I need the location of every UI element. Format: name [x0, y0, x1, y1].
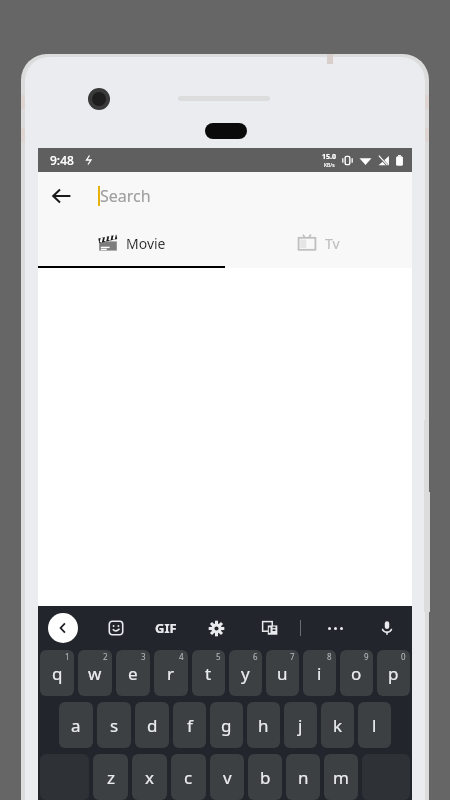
staticText: a [71, 714, 81, 737]
staticText: c [184, 766, 193, 789]
staticText: GIF [155, 619, 177, 637]
staticText: j [298, 714, 303, 737]
staticText: q [52, 662, 63, 685]
staticText: w [88, 662, 102, 685]
button[interactable]: Search [86, 172, 412, 220]
staticText: y [241, 662, 250, 685]
button[interactable]: e [116, 650, 150, 696]
button[interactable]: k [321, 702, 354, 748]
staticText: 9:48 [50, 152, 74, 168]
staticText: 15.0 [322, 152, 336, 162]
button[interactable]: Tv [225, 220, 412, 266]
staticText: 3 [141, 651, 146, 662]
staticText: Movie [126, 234, 166, 253]
staticText: o [351, 662, 362, 685]
button[interactable]: More options [320, 613, 350, 643]
staticText: v [223, 766, 232, 789]
button[interactable]: n [286, 754, 320, 800]
button[interactable]: Voice input [372, 613, 402, 643]
button[interactable]: f [173, 702, 206, 748]
staticText: l [372, 714, 377, 737]
staticText: 6 [253, 651, 258, 662]
staticText: h [258, 714, 269, 737]
staticText: KB/s [324, 162, 335, 169]
staticText: u [277, 662, 288, 685]
staticText: 0 [401, 651, 406, 662]
button[interactable]: j [284, 702, 317, 748]
button[interactable]: y [229, 650, 262, 696]
button[interactable]: s [97, 702, 131, 748]
staticText: g [221, 714, 232, 737]
staticText: p [388, 662, 399, 685]
staticText: z [107, 766, 115, 789]
staticText: i [317, 662, 322, 685]
staticText: t [205, 662, 212, 685]
button[interactable]: Translate [255, 613, 285, 643]
button[interactable]: w [78, 650, 112, 696]
staticText: 8 [327, 651, 332, 662]
staticText: b [260, 766, 271, 789]
staticText: x [145, 766, 154, 789]
button[interactable]: o [340, 650, 373, 696]
staticText: 5 [216, 651, 221, 662]
staticText: f [187, 714, 193, 737]
staticText: 9 [364, 651, 369, 662]
staticText: Search [100, 185, 151, 207]
button[interactable]: z [93, 754, 128, 800]
button[interactable]: b [248, 754, 282, 800]
button[interactable]: Stickers [101, 613, 131, 643]
button[interactable]: x [132, 754, 167, 800]
button[interactable]: Back [48, 613, 78, 643]
staticText: r [167, 662, 175, 685]
button[interactable]: d [135, 702, 169, 748]
staticText: 2 [103, 651, 108, 662]
staticText: Tv [325, 234, 340, 253]
button[interactable]: Back [38, 172, 86, 220]
button[interactable]: c [171, 754, 206, 800]
button[interactable]: Settings [201, 613, 231, 643]
staticText: m [333, 766, 349, 789]
staticText: 7 [290, 651, 295, 662]
button[interactable]: t [192, 650, 225, 696]
button[interactable]: q [40, 650, 74, 696]
button[interactable]: GIF [155, 613, 177, 643]
staticText: s [110, 714, 119, 737]
button[interactable]: h [247, 702, 280, 748]
staticText: 1 [65, 651, 70, 662]
button[interactable]: p [377, 650, 410, 696]
button[interactable]: Movie [38, 220, 225, 266]
button[interactable]: v [210, 754, 244, 800]
button[interactable]: u [266, 650, 299, 696]
staticText: n [298, 766, 309, 789]
button[interactable]: g [210, 702, 243, 748]
staticText: k [333, 714, 343, 737]
button[interactable]: a [59, 702, 93, 748]
staticText: d [147, 714, 158, 737]
button[interactable]: m [324, 754, 358, 800]
button[interactable]: l [358, 702, 391, 748]
staticText: e [128, 662, 138, 685]
button[interactable]: r [154, 650, 188, 696]
button[interactable]: i [303, 650, 336, 696]
staticText: 4 [179, 651, 184, 662]
